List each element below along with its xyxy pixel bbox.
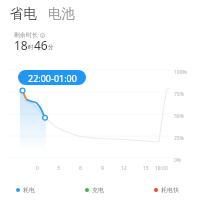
button[interactable]: 电池 (48, 5, 75, 22)
staticText: 9 (101, 165, 104, 172)
staticText: 0 (36, 165, 39, 172)
staticText: 12 (121, 165, 127, 172)
staticText: 50% (174, 113, 184, 120)
staticText: 100% (174, 69, 187, 76)
staticText: 18 (14, 37, 28, 53)
button[interactable]: 耗电 (16, 186, 35, 194)
staticText: 6 (79, 165, 82, 172)
staticText: 25% (174, 135, 184, 142)
staticText: 耗电快 (161, 186, 179, 194)
staticText: 充电 (92, 186, 104, 194)
button[interactable]: 充电 (85, 186, 104, 194)
staticText: 46 (34, 37, 48, 53)
button[interactable]: 22:00-01:00 (18, 70, 86, 85)
button[interactable]: 耗电快 (154, 186, 179, 194)
staticText: 75% (174, 91, 184, 98)
staticText: 3 (57, 165, 60, 172)
staticText: 18:00 (155, 165, 168, 172)
staticText: 时 (28, 44, 34, 51)
button[interactable]: 省电 (10, 5, 37, 22)
staticText: 电池 (48, 5, 75, 22)
other: Info (40, 33, 45, 38)
staticText: 分 (48, 44, 54, 51)
staticText: 0% (174, 157, 182, 164)
staticText: 剩余时长 (14, 31, 38, 39)
staticText: 22:00-01:00 (28, 72, 77, 84)
staticText: 省电 (10, 5, 37, 22)
staticText: 15 (143, 165, 149, 172)
staticText: 耗电 (23, 186, 35, 194)
